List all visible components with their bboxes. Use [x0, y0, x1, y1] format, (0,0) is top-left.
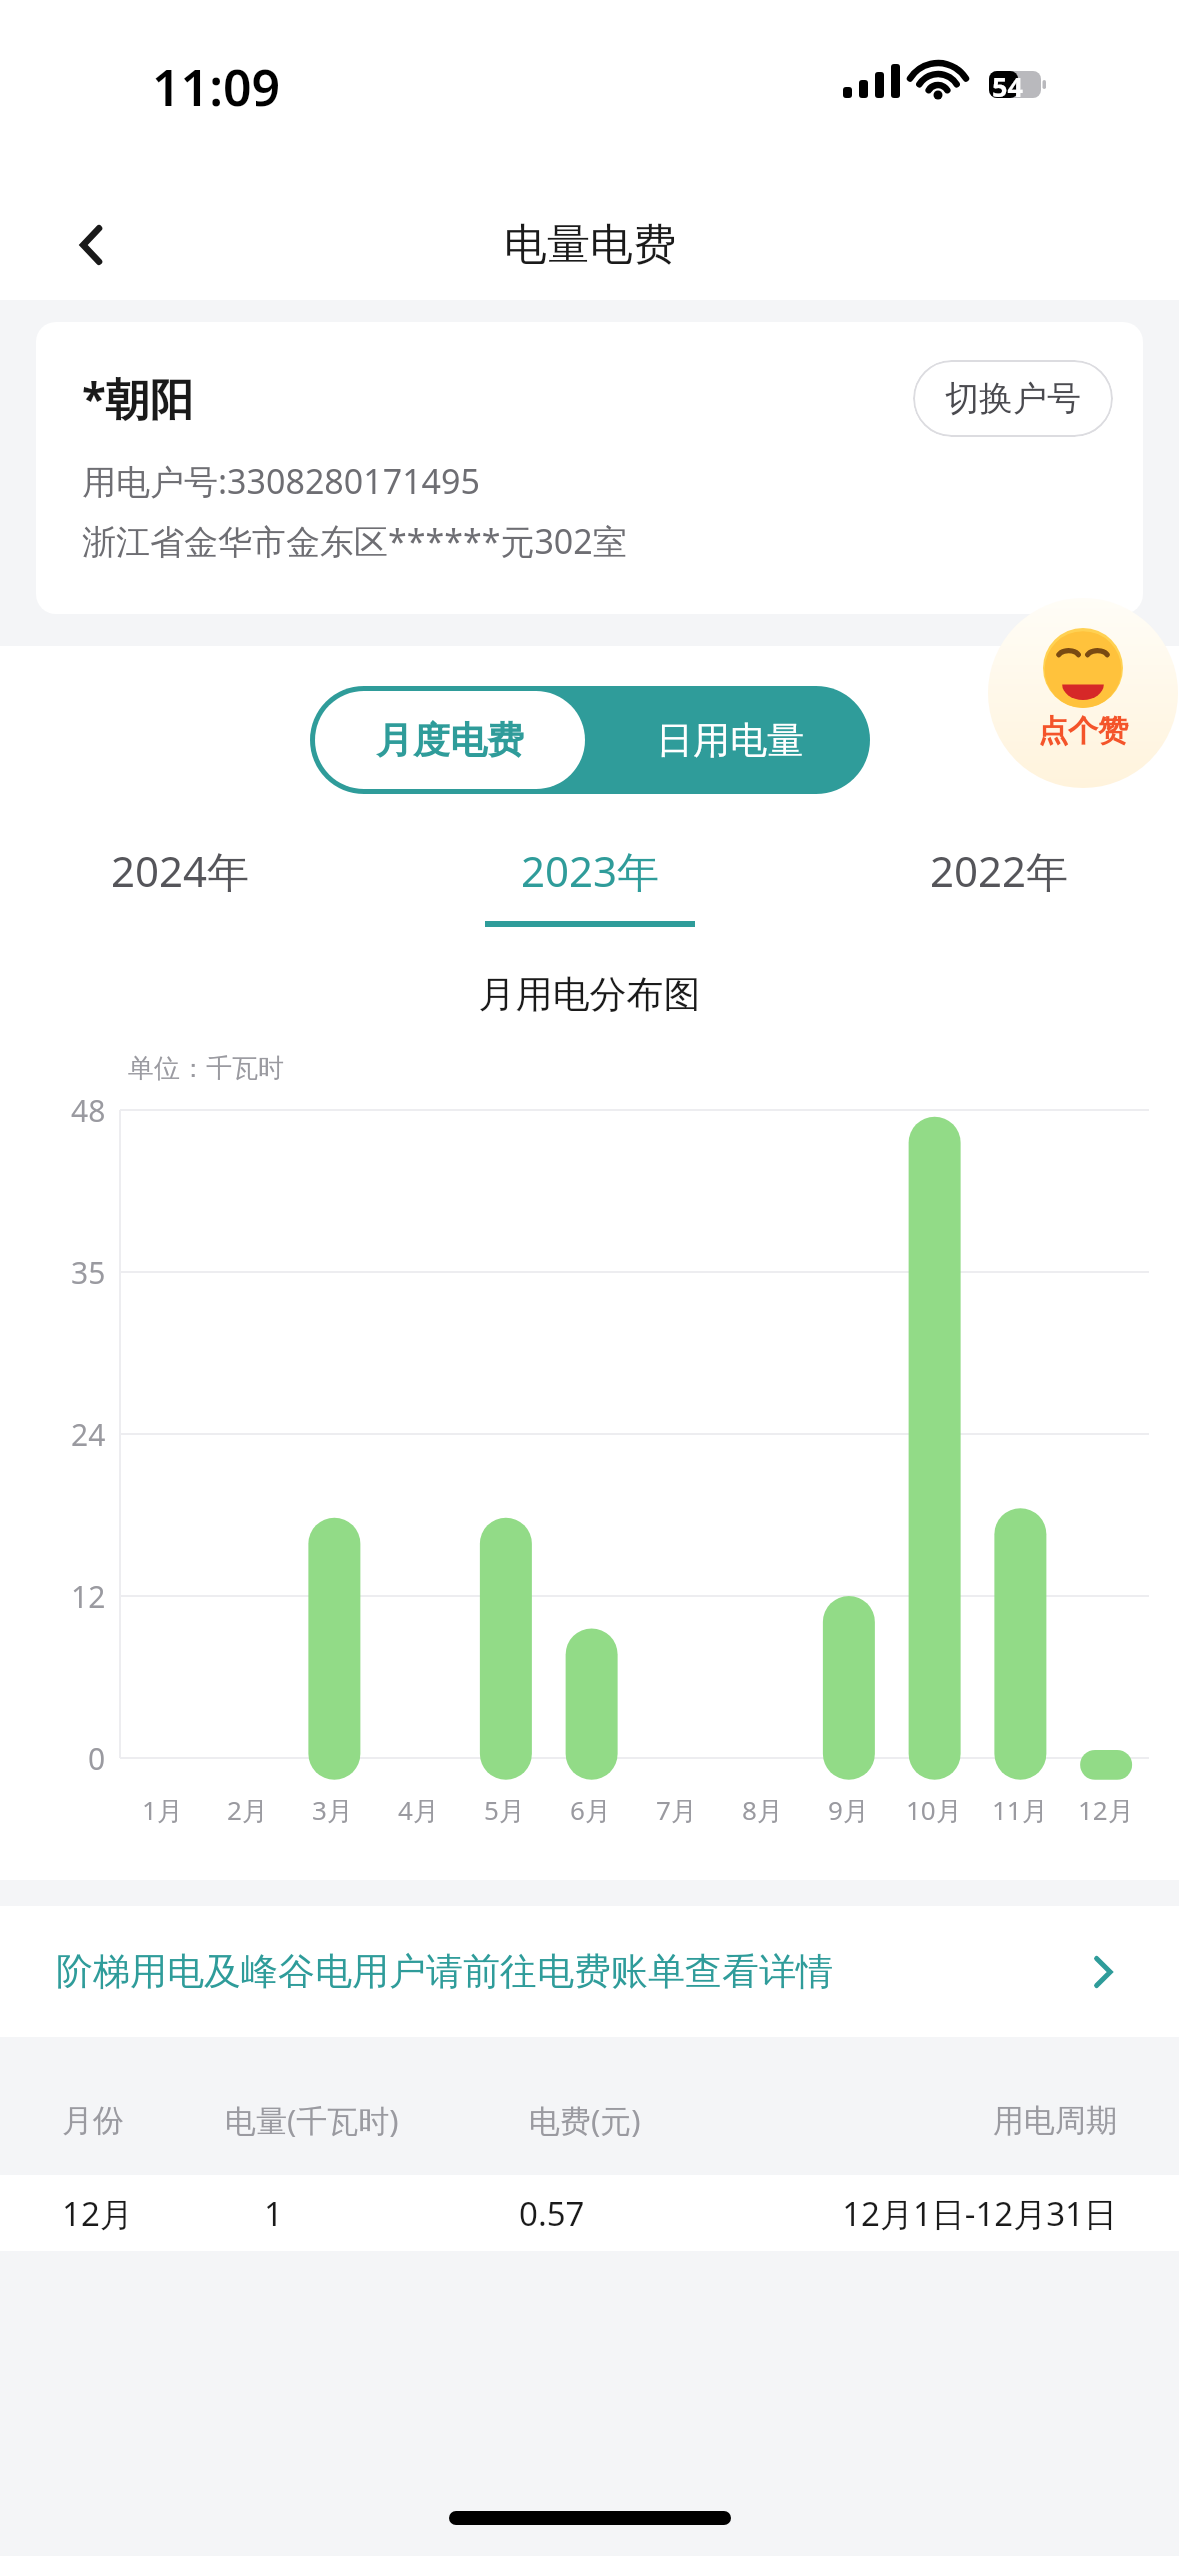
- button[interactable]: *朝阳: [36, 322, 1143, 614]
- staticText: 电费(元): [529, 2099, 813, 2141]
- staticText: 11月: [992, 1792, 1048, 1828]
- staticText: 12月: [1078, 1792, 1134, 1828]
- staticText: 24: [71, 1414, 106, 1455]
- button[interactable]: 2023年: [450, 842, 730, 927]
- staticText: 点个赞: [1038, 712, 1128, 750]
- staticText: 8月: [742, 1792, 783, 1828]
- staticText: 0.57: [519, 2191, 585, 2236]
- staticText: 单位：千瓦时: [128, 1052, 284, 1085]
- staticText: 2022年: [930, 842, 1069, 899]
- staticText: 月用电分布图: [0, 971, 1179, 1018]
- staticText: 电量(千瓦时): [225, 2099, 529, 2141]
- staticText: 月度电费: [376, 717, 524, 764]
- staticText: 用电户号:3308280171495: [82, 458, 480, 504]
- staticText: 阶梯用电及峰谷电用户请前往电费账单查看详情: [56, 1948, 1083, 1995]
- staticText: 35: [71, 1252, 106, 1293]
- staticText: 4月: [398, 1792, 439, 1828]
- button[interactable]: 阶梯用电及峰谷电用户请前往电费账单查看详情: [0, 1906, 1179, 2037]
- staticText: 7月: [656, 1792, 697, 1828]
- staticText: 54: [992, 68, 1023, 105]
- staticText: 日用电量: [656, 717, 804, 764]
- staticText: 0: [88, 1738, 106, 1779]
- staticText: 月份: [62, 2101, 225, 2140]
- staticText: 48: [71, 1090, 106, 1131]
- staticText: 2024年: [111, 842, 250, 899]
- button[interactable]: Back: [56, 209, 128, 281]
- staticText: 3月: [312, 1792, 353, 1828]
- button[interactable]: 日用电量: [590, 686, 870, 794]
- staticText: 12: [71, 1576, 106, 1617]
- staticText: 12月1日-12月31日: [759, 2191, 1117, 2236]
- staticText: 12月: [62, 2191, 212, 2236]
- staticText: 6月: [570, 1792, 611, 1828]
- staticText: 5月: [484, 1792, 525, 1828]
- staticText: 浙江省金华市金东区******元302室: [82, 518, 627, 564]
- staticText: 10月: [906, 1792, 962, 1828]
- staticText: 用电周期: [813, 2101, 1117, 2140]
- staticText: 9月: [828, 1792, 869, 1828]
- button[interactable]: 12月: [0, 2175, 1179, 2251]
- staticText: 电量电费: [504, 218, 676, 272]
- staticText: 1: [264, 2191, 283, 2236]
- staticText: 11:09: [152, 53, 281, 121]
- staticText: *朝阳: [82, 368, 194, 428]
- button[interactable]: 点个赞: [988, 598, 1178, 788]
- staticText: 切换户号: [945, 377, 1081, 420]
- staticText: 2023年: [521, 842, 660, 899]
- button[interactable]: 切换户号: [913, 360, 1113, 437]
- button[interactable]: 月度电费: [315, 691, 585, 789]
- button[interactable]: 2022年: [859, 842, 1139, 927]
- staticText: 1月: [142, 1792, 183, 1828]
- staticText: 2月: [227, 1792, 268, 1828]
- button[interactable]: 2024年: [40, 842, 320, 927]
